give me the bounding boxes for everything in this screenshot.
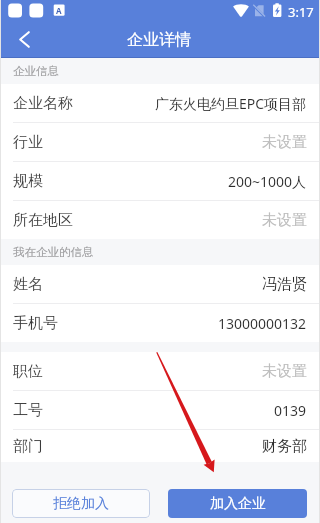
staticText: 部门 bbox=[13, 437, 43, 456]
staticText: 拒绝加入 bbox=[53, 495, 109, 513]
button[interactable]: 行业 bbox=[0, 123, 320, 161]
staticText: 财务部 bbox=[262, 437, 307, 456]
button[interactable]: 返回 bbox=[0, 21, 48, 58]
button[interactable]: 企业名称 bbox=[0, 84, 320, 122]
button[interactable]: 加入企业 bbox=[168, 489, 307, 518]
staticText: 13000000132 bbox=[218, 314, 307, 333]
staticText: 未设置 bbox=[262, 362, 307, 381]
button[interactable]: 工号 bbox=[0, 391, 320, 429]
staticText: 企业详情 bbox=[127, 30, 191, 50]
button[interactable]: 拒绝加入 bbox=[12, 489, 150, 518]
staticText: 职位 bbox=[13, 362, 43, 381]
button[interactable]: 手机号 bbox=[0, 304, 320, 342]
staticText: 工号 bbox=[13, 401, 43, 420]
staticText: 3:17 bbox=[288, 3, 314, 21]
button[interactable]: 姓名 bbox=[0, 265, 320, 303]
button[interactable]: 部门 bbox=[0, 430, 320, 462]
button[interactable]: 所在地区 bbox=[0, 201, 320, 239]
staticText: 所在地区 bbox=[13, 211, 73, 230]
staticText: 行业 bbox=[13, 133, 43, 152]
staticText: 0139 bbox=[274, 401, 307, 420]
staticText: 200~1000人 bbox=[228, 172, 307, 191]
button[interactable]: 职位 bbox=[0, 352, 320, 390]
staticText: 冯浩贤 bbox=[262, 275, 307, 294]
staticText: 手机号 bbox=[13, 314, 58, 333]
staticText: 企业名称 bbox=[13, 94, 73, 113]
staticText: A bbox=[56, 5, 62, 16]
staticText: 我在企业的信息 bbox=[13, 245, 94, 259]
staticText: 未设置 bbox=[262, 133, 307, 152]
staticText: 企业信息 bbox=[13, 64, 59, 78]
staticText: 广东火电约旦EPC项目部 bbox=[155, 94, 307, 113]
button[interactable]: 规模 bbox=[0, 162, 320, 200]
staticText: 未设置 bbox=[262, 211, 307, 230]
staticText: 规模 bbox=[13, 172, 43, 191]
staticText: 姓名 bbox=[13, 275, 43, 294]
staticText: 加入企业 bbox=[210, 495, 266, 513]
